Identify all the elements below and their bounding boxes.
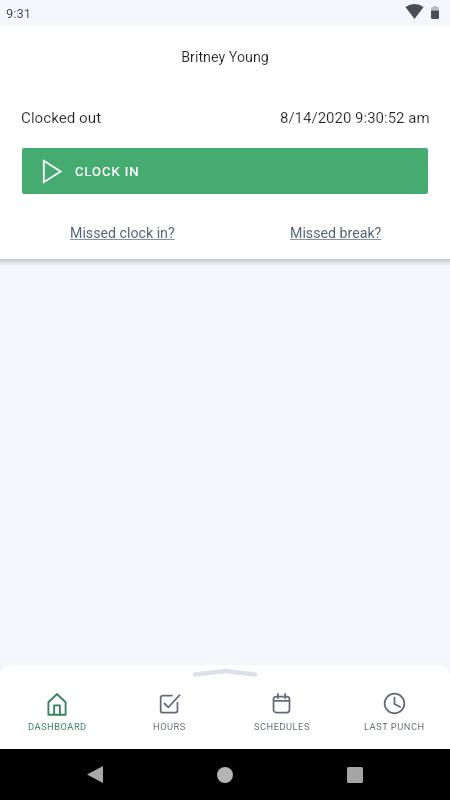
button[interactable]: Home [209, 759, 241, 791]
staticText: 9:31 [6, 6, 32, 21]
button[interactable]: DASHBOARD [1, 692, 113, 732]
staticText: HOURS [153, 721, 186, 732]
staticText: Missed break? [290, 225, 382, 242]
button[interactable]: CLOCK IN [22, 148, 428, 194]
button[interactable]: Missed clock in? [58, 221, 187, 246]
button[interactable]: Missed break? [278, 221, 394, 246]
staticText: CLOCK IN [75, 164, 140, 179]
button[interactable]: Back [79, 759, 110, 790]
staticText: DASHBOARD [28, 721, 87, 732]
staticText: Britney Young [0, 49, 450, 66]
staticText: LAST PUNCH [364, 721, 425, 732]
staticText: SCHEDULES [254, 721, 310, 732]
button[interactable]: LAST PUNCH [338, 692, 450, 732]
staticText: 8/14/2020 9:30:52 am [280, 109, 430, 127]
button[interactable]: SCHEDULES [225, 692, 338, 732]
staticText: Clocked out [21, 109, 102, 127]
button[interactable]: Recents [339, 759, 371, 791]
button[interactable]: HOURS [113, 692, 225, 732]
staticText: Missed clock in? [70, 225, 175, 242]
